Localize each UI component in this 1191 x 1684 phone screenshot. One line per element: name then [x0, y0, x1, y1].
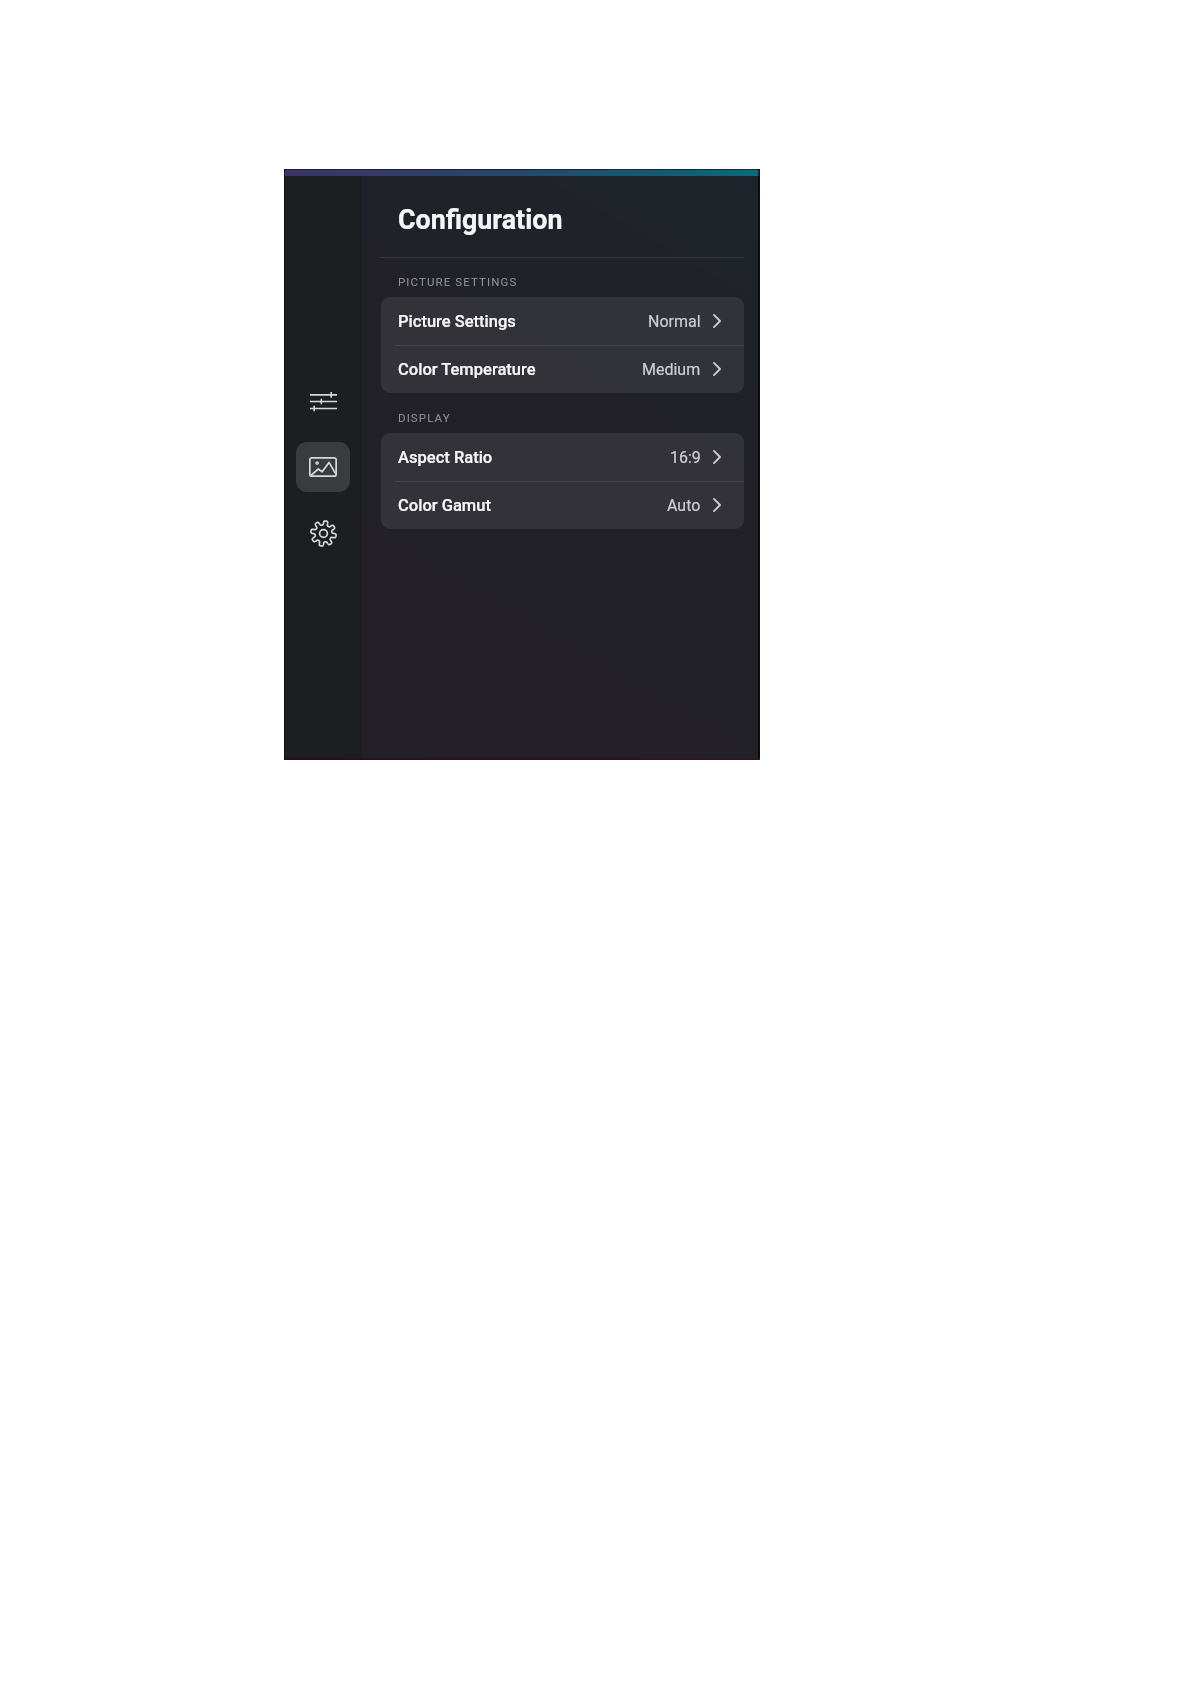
staticText: Color Temperature [398, 360, 536, 379]
button[interactable]: Settings [296, 508, 350, 558]
staticText: Color Gamut [398, 496, 491, 515]
staticText: PICTURE SETTINGS [398, 275, 518, 288]
button[interactable]: Picture adjustments [296, 376, 350, 426]
staticText: Aspect Ratio [398, 448, 493, 467]
staticText: DISPLAY [398, 411, 451, 424]
staticText: 16:9 [670, 448, 701, 467]
staticText: Configuration [398, 204, 563, 235]
button[interactable]: Picture Settings [381, 297, 744, 345]
button[interactable]: Color Temperature [381, 345, 744, 393]
staticText: Auto [667, 496, 701, 515]
staticText: Picture Settings [398, 312, 516, 331]
staticText: Medium [642, 360, 701, 379]
staticText: Normal [648, 312, 701, 331]
button[interactable]: Aspect Ratio [381, 433, 744, 481]
button[interactable]: Picture [296, 442, 350, 492]
button[interactable]: Color Gamut [381, 481, 744, 529]
